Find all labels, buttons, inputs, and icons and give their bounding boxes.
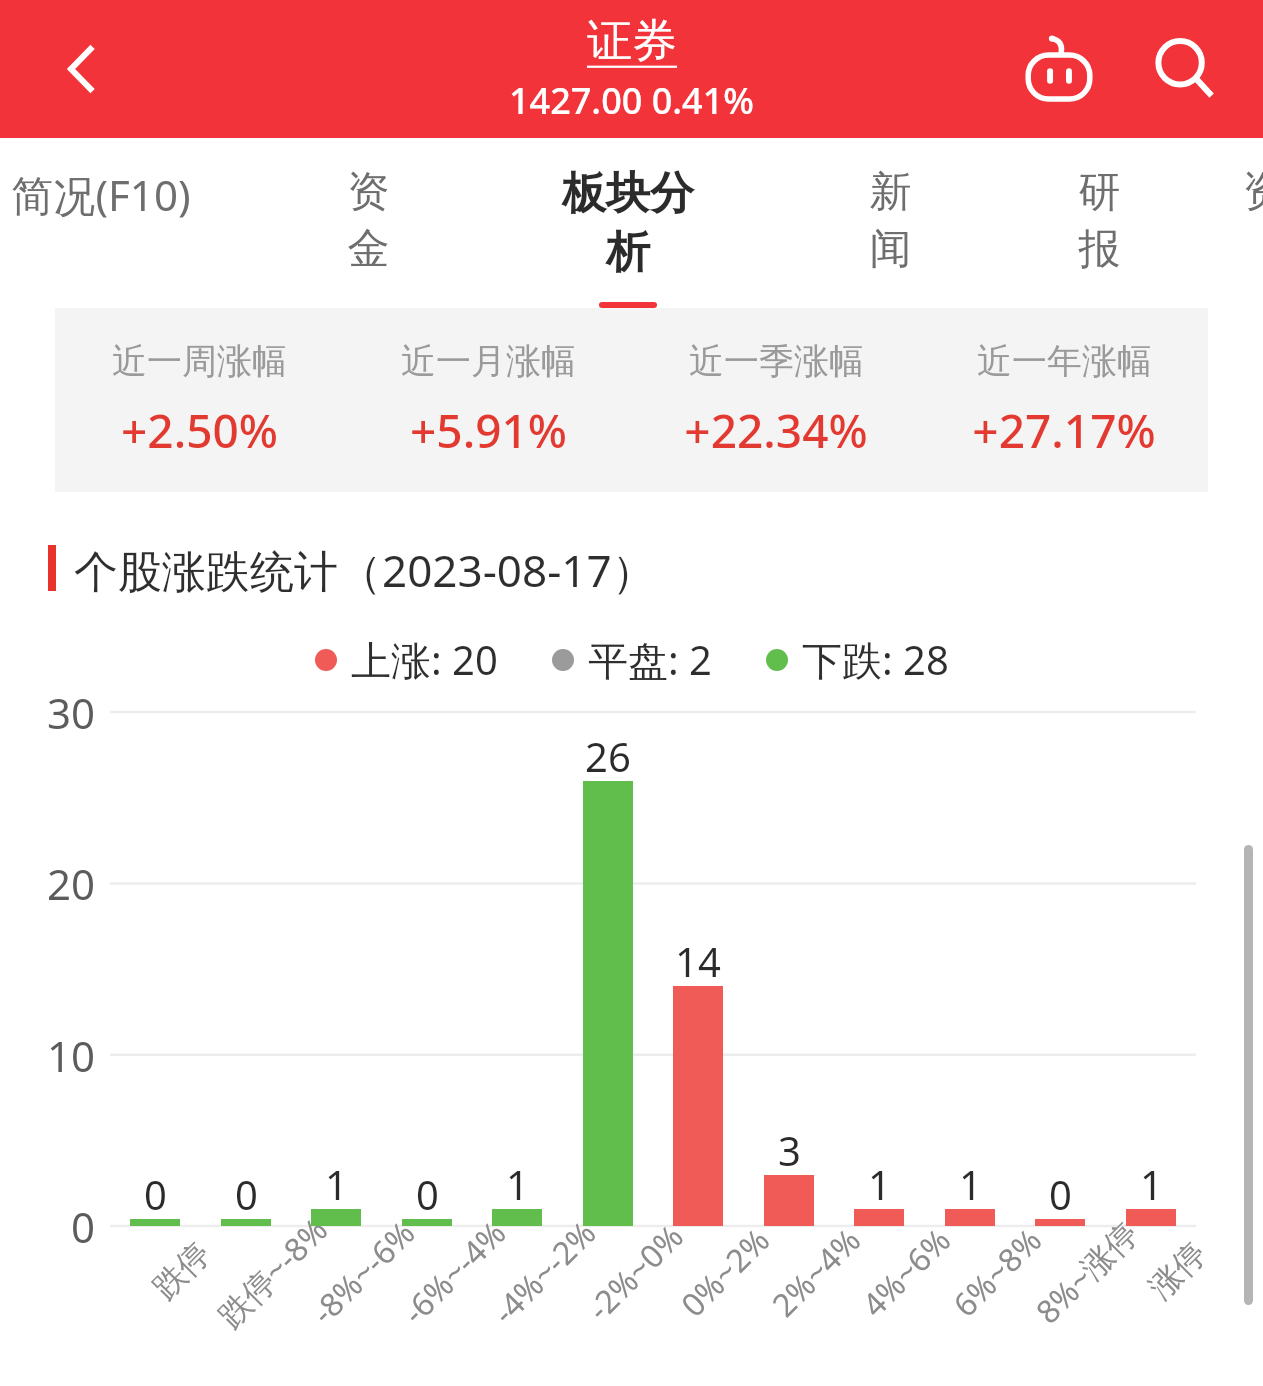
- staticText: 近一月涨幅: [401, 339, 576, 383]
- staticText: -4%~-2%: [483, 1211, 605, 1333]
- staticText: -8%~-6%: [302, 1211, 424, 1333]
- staticText: 0: [144, 1167, 167, 1221]
- button[interactable]: 近一周涨幅: [55, 339, 344, 462]
- staticText: 3: [778, 1123, 801, 1177]
- staticText: -2%~0%: [577, 1215, 693, 1330]
- staticText: 跌停: [145, 1234, 218, 1307]
- button[interactable]: 资: [1243, 138, 1263, 308]
- button[interactable]: 近一年涨幅: [920, 339, 1208, 462]
- button[interactable]: 板块分析: [547, 138, 709, 308]
- staticText: 近一年涨幅: [977, 339, 1152, 383]
- staticText: 资: [1243, 166, 1263, 219]
- staticText: 8%~涨停: [1026, 1212, 1147, 1333]
- staticText: 资金: [330, 166, 407, 276]
- button[interactable]: AI assistant: [1013, 23, 1105, 115]
- staticText: 4%~6%: [852, 1218, 960, 1326]
- staticText: 1: [1140, 1157, 1163, 1211]
- button[interactable]: 平盘: 2: [552, 632, 712, 687]
- button[interactable]: 近一季涨幅: [632, 339, 920, 462]
- staticText: 10: [47, 1027, 96, 1084]
- staticText: 26: [585, 729, 631, 783]
- staticText: 个股涨跌统计（2023-08-17）: [74, 540, 656, 596]
- staticText: 0: [71, 1198, 96, 1255]
- staticText: 14: [675, 934, 721, 988]
- staticText: 1: [959, 1157, 982, 1211]
- staticText: 1: [325, 1157, 348, 1211]
- staticText: 0: [1049, 1167, 1072, 1221]
- staticText: 上涨: 20: [351, 632, 498, 687]
- staticText: -6%~-4%: [393, 1211, 515, 1333]
- button[interactable]: 简况(F10): [0, 138, 236, 308]
- staticText: 30: [47, 684, 96, 741]
- button[interactable]: Back: [40, 26, 126, 112]
- staticText: +2.50%: [121, 399, 278, 462]
- staticText: 0: [416, 1167, 439, 1221]
- staticText: 1: [868, 1157, 891, 1211]
- staticText: 研报: [1061, 166, 1138, 276]
- button[interactable]: 上涨: 20: [315, 632, 498, 687]
- staticText: 0%~2%: [671, 1218, 779, 1326]
- staticText: 平盘: 2: [588, 632, 712, 687]
- staticText: 板块分析: [547, 166, 709, 280]
- staticText: 涨停: [1141, 1234, 1214, 1307]
- staticText: +5.91%: [410, 399, 567, 462]
- button[interactable]: Search: [1139, 23, 1231, 115]
- staticText: 近一周涨幅: [112, 339, 287, 383]
- button[interactable]: 资金: [330, 138, 407, 308]
- staticText: 近一季涨幅: [689, 339, 864, 383]
- staticText: 1: [506, 1157, 529, 1211]
- staticText: +22.34%: [684, 399, 868, 462]
- staticText: 0: [235, 1167, 258, 1221]
- staticText: +27.17%: [972, 399, 1156, 462]
- button[interactable]: 下跌: 28: [766, 632, 949, 687]
- button[interactable]: 新闻: [852, 138, 929, 308]
- staticText: 1427.00 0.41%: [509, 76, 754, 125]
- staticText: 20: [47, 855, 96, 912]
- staticText: 简况(F10): [11, 166, 191, 223]
- staticText: 6%~8%: [943, 1218, 1051, 1326]
- staticText: 跌停~-8%: [208, 1208, 337, 1337]
- staticText: 新闻: [852, 166, 929, 276]
- button[interactable]: 近一月涨幅: [344, 339, 632, 462]
- button[interactable]: 研报: [1061, 138, 1138, 308]
- staticText: 下跌: 28: [802, 632, 949, 687]
- staticText: 2%~4%: [762, 1218, 870, 1326]
- staticText: 证券: [587, 13, 677, 70]
